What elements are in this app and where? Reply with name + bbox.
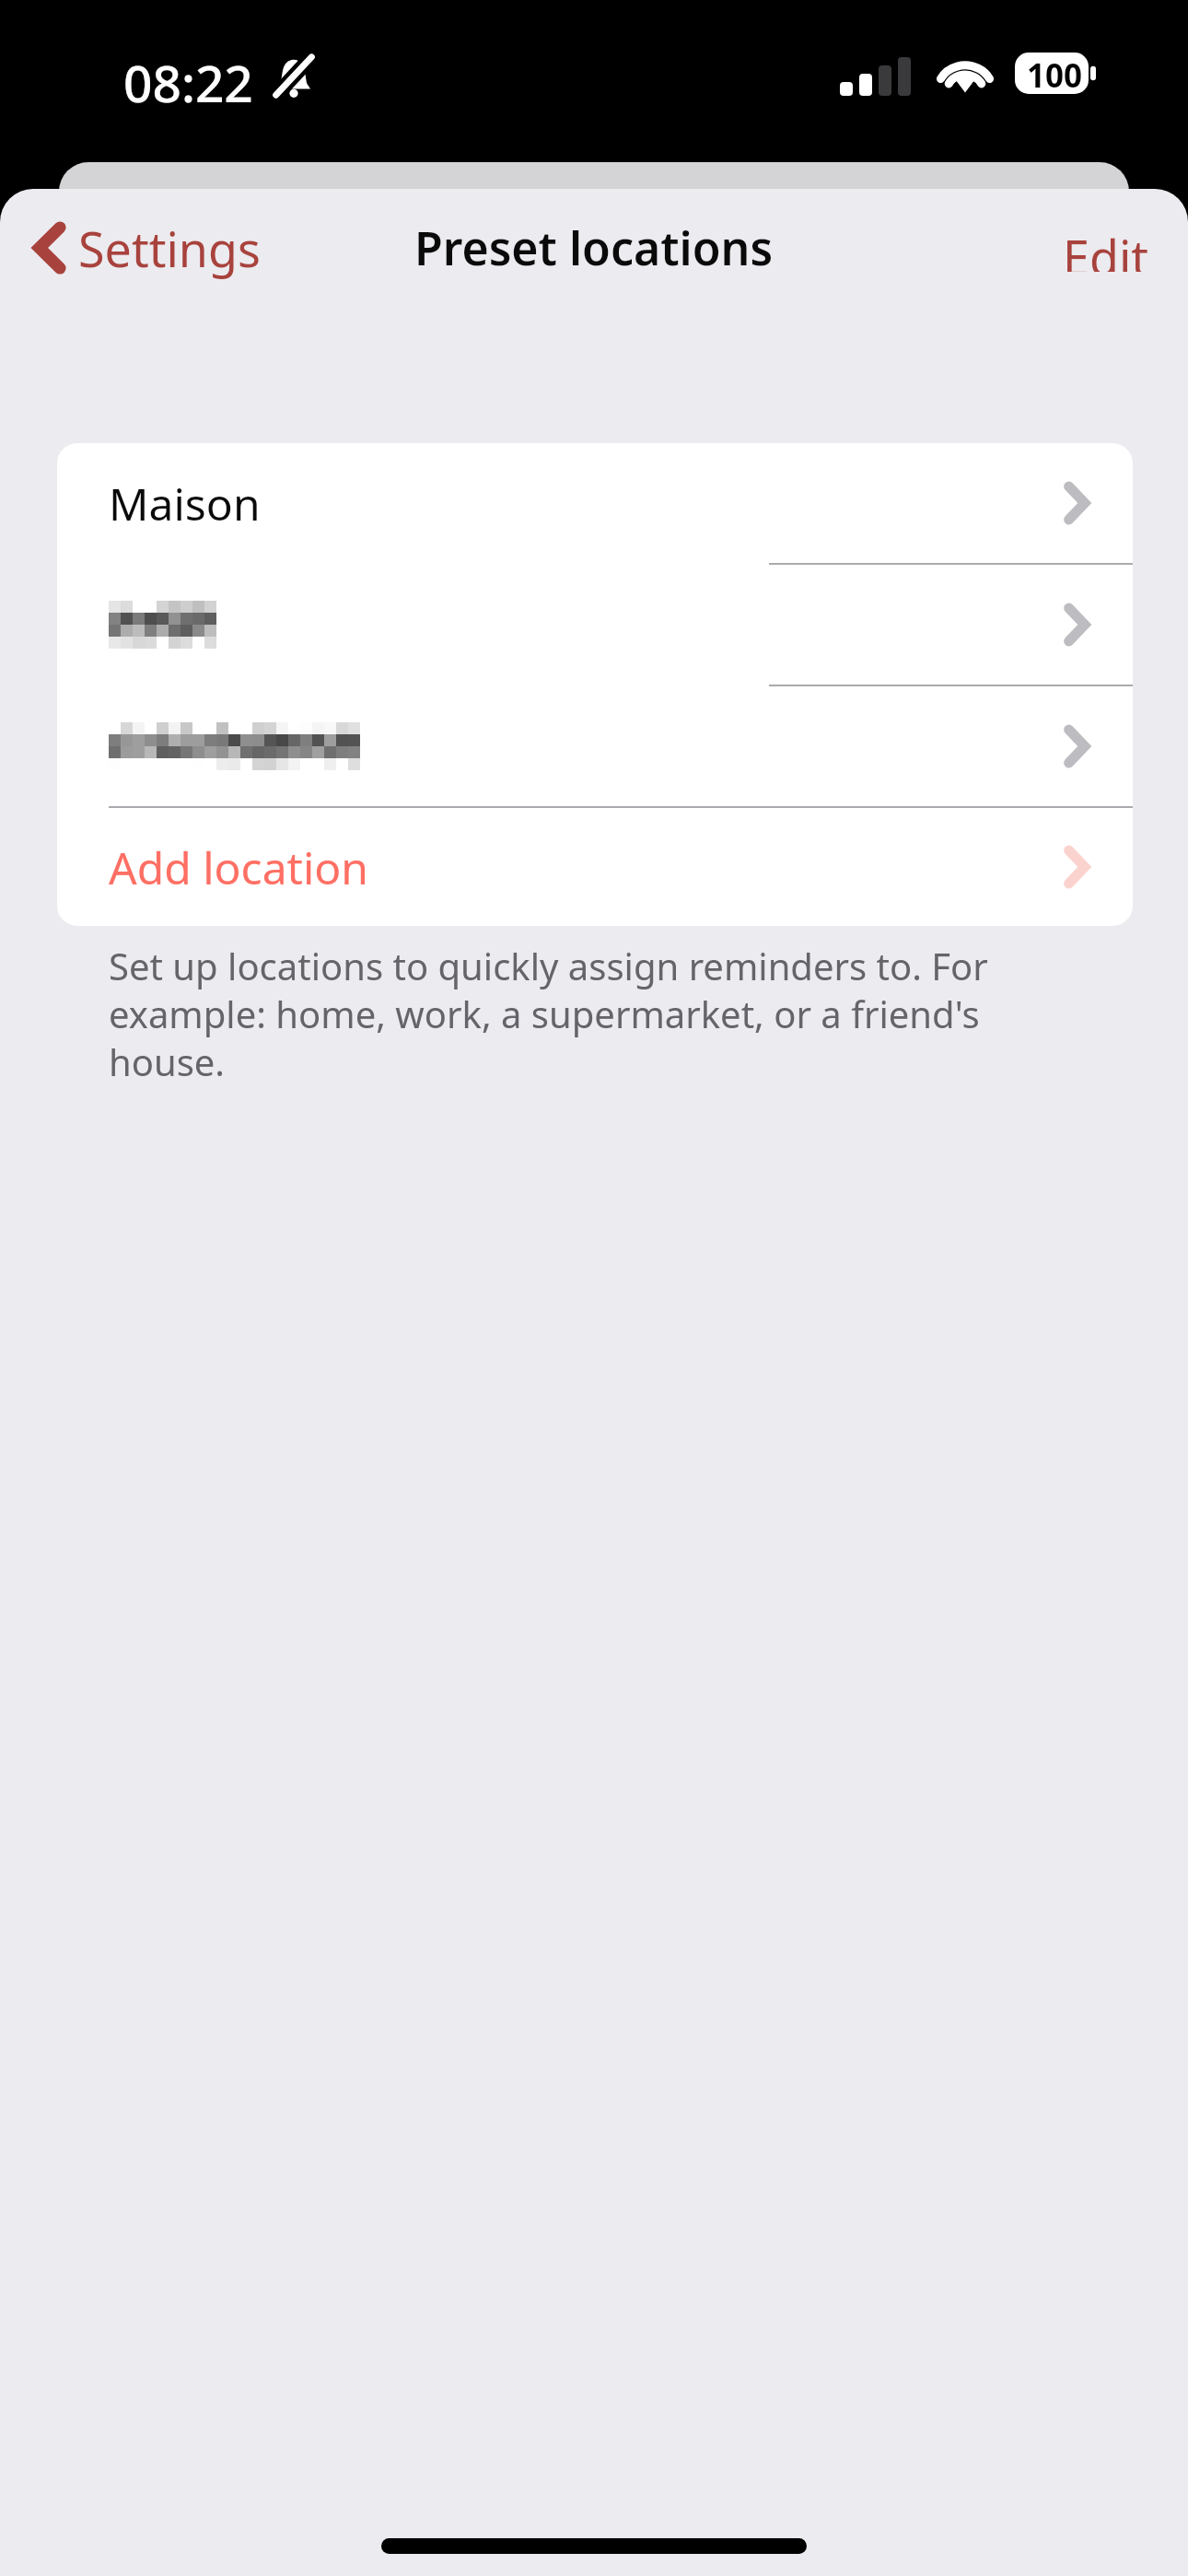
button[interactable]: Edit — [1024, 209, 1188, 287]
staticText: 08:22 — [123, 48, 253, 117]
staticText: Set up locations to quickly assign remin… — [109, 941, 1080, 1087]
button[interactable]: Maison — [57, 443, 1133, 563]
staticText: 100 — [1027, 53, 1083, 93]
button[interactable]: Settings — [24, 209, 274, 287]
staticText: Edit — [1063, 224, 1149, 272]
staticText: Maison — [109, 474, 261, 533]
button[interactable]: Add location — [57, 808, 1133, 926]
staticText: Preset locations — [414, 217, 774, 279]
button[interactable]: Saved location — [57, 686, 1133, 806]
button[interactable]: Saved location — [57, 565, 1133, 685]
staticText: Add location — [109, 837, 369, 897]
staticText: Settings — [78, 216, 261, 281]
